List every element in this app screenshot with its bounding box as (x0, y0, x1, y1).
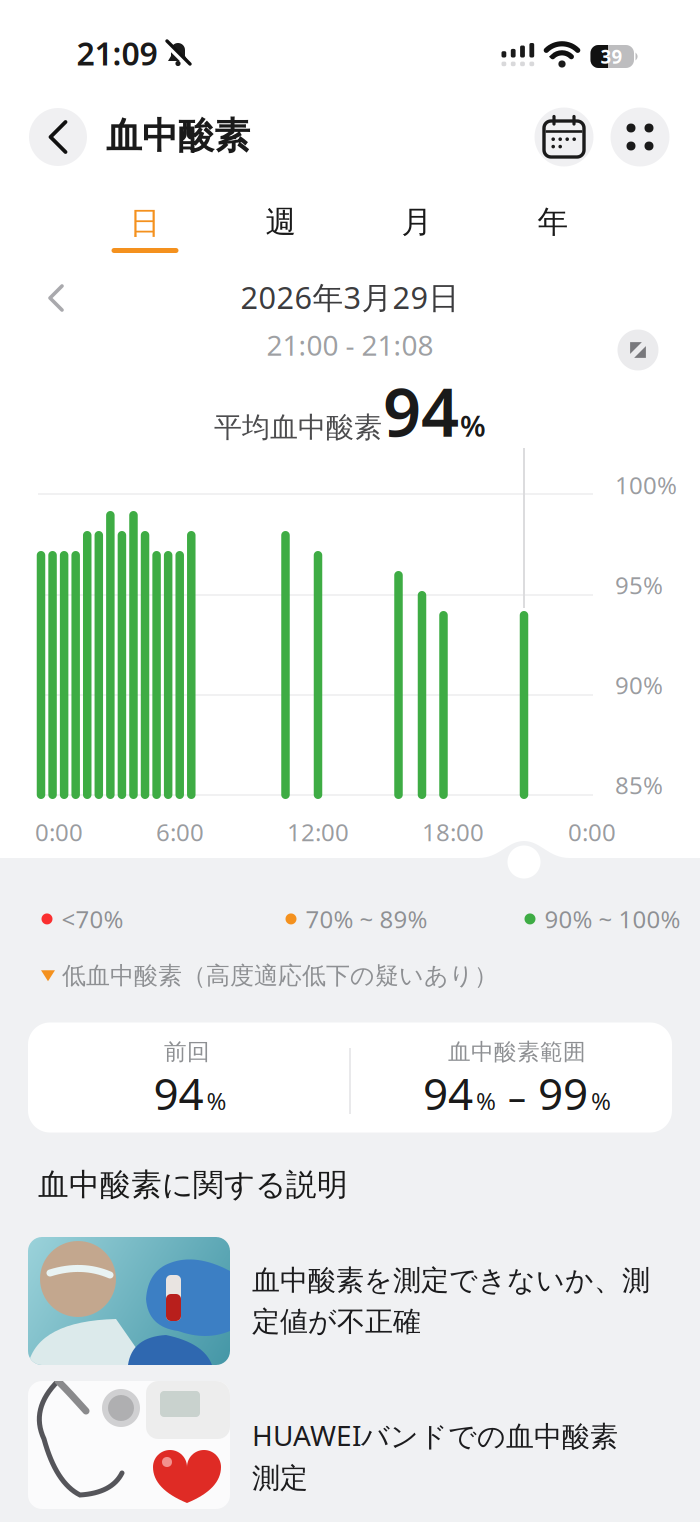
staticText: 99 (538, 1064, 588, 1122)
staticText: 測定 (252, 1461, 308, 1495)
staticText: 血中酸素 (106, 114, 250, 158)
button[interactable] (610, 107, 669, 166)
staticText: 21:00 - 21:08 (266, 326, 433, 364)
staticText: 70% ~ 89% (305, 903, 427, 935)
staticText: 低血中酸素（高度適応低下の疑いあり） (62, 961, 498, 990)
staticText: 85% (615, 769, 663, 801)
button[interactable]: 週 (247, 198, 315, 246)
staticText: 90% ~ 100% (544, 903, 680, 935)
staticText: 0:00 (568, 816, 616, 848)
staticText: 年 (537, 203, 568, 241)
button[interactable]: HUAWEIバンドでの血中酸素 (28, 1381, 672, 1509)
staticText: 94 (153, 1064, 203, 1122)
staticText: 2026年3月29日 (240, 277, 459, 317)
button[interactable] (617, 329, 658, 370)
staticText: % (206, 1085, 226, 1117)
staticText: 日 (129, 204, 160, 242)
button[interactable] (29, 108, 87, 166)
staticText: 前回 (164, 1038, 210, 1066)
staticText: 12:00 (287, 816, 349, 848)
staticText: 血中酸素に関する説明 (38, 1166, 348, 1204)
button[interactable]: 月 (383, 198, 451, 246)
staticText: 月 (401, 203, 432, 241)
staticText: 95% (615, 569, 663, 601)
staticText: HUAWEIバンドでの血中酸素 (252, 1417, 618, 1454)
staticText: % (476, 1085, 496, 1117)
staticText: 90% (615, 669, 663, 701)
button[interactable] (534, 107, 593, 166)
staticText: % (591, 1085, 611, 1117)
button[interactable]: 血中酸素を測定できないか、測 (28, 1237, 672, 1365)
button[interactable] (44, 283, 70, 313)
staticText: 血中酸素を測定できないか、測 (252, 1263, 650, 1297)
staticText: 定値が不正確 (252, 1304, 421, 1339)
staticText: 0:00 (35, 816, 83, 848)
staticText: % (460, 406, 486, 445)
button[interactable]: 日 (111, 199, 179, 255)
staticText: 100% (615, 469, 677, 501)
staticText: 94 (423, 1064, 473, 1122)
staticText: 94 (383, 367, 459, 455)
staticText: 39 (600, 44, 622, 69)
staticText: 18:00 (422, 816, 484, 848)
staticText: <70% (61, 903, 123, 935)
staticText: 週 (265, 203, 296, 241)
button[interactable]: 年 (519, 198, 587, 246)
staticText: 21:09 (76, 32, 157, 74)
staticText: 平均血中酸素 (214, 410, 382, 445)
staticText: 血中酸素範囲 (448, 1038, 586, 1066)
staticText: 6:00 (156, 816, 204, 848)
staticText: – (499, 1072, 535, 1120)
